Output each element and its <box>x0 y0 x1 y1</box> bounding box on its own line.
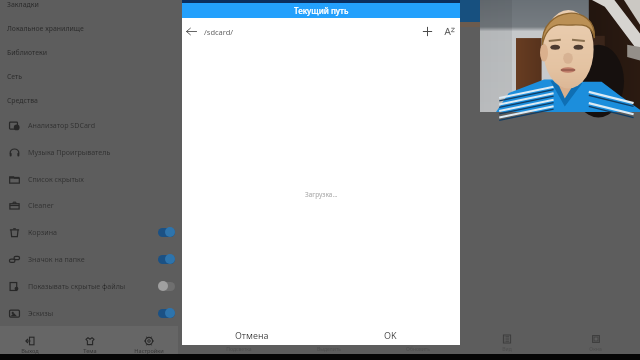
button[interactable]: OK <box>321 329 460 341</box>
button[interactable]: Switch on <box>158 254 175 264</box>
staticText: Библиотеки <box>7 48 48 57</box>
staticText: Значок на папке <box>28 254 85 264</box>
staticText: Выделить <box>317 346 341 353</box>
button[interactable]: Вид <box>462 331 551 353</box>
staticText: OK <box>384 329 397 341</box>
button[interactable]: Switch on <box>158 227 175 237</box>
staticText: Список скрытых <box>28 174 84 184</box>
button[interactable]: Выделить <box>284 331 373 353</box>
button[interactable]: Вставить <box>104 331 194 353</box>
button[interactable]: Средства <box>0 89 178 112</box>
button[interactable]: Back <box>182 18 201 45</box>
staticText: Отмена <box>235 329 269 341</box>
button[interactable]: Выход <box>0 326 60 354</box>
button[interactable]: Библиотеки <box>0 41 178 64</box>
button[interactable]: Тема <box>60 326 119 354</box>
button[interactable]: Локальное хранилище <box>0 17 178 40</box>
button[interactable]: Отмена <box>182 329 321 341</box>
button[interactable]: Значок на папке <box>0 246 178 272</box>
staticText: Вставить <box>138 346 160 353</box>
staticText: Обновить <box>406 346 430 353</box>
staticText: Музыка Проигрыватель <box>28 147 111 157</box>
staticText: /sdcard/ <box>204 27 234 37</box>
staticText: Средства <box>7 96 38 105</box>
button[interactable]: Показывать скрытые файлы <box>0 273 178 299</box>
button[interactable]: Анализатор SDCard <box>0 112 178 138</box>
button[interactable]: Switch on <box>158 308 175 318</box>
button[interactable]: Копировать <box>14 331 104 353</box>
staticText: Закладки <box>7 0 39 9</box>
button[interactable]: Настройки <box>119 326 178 354</box>
staticText: Тема <box>83 347 97 354</box>
staticText: Выход <box>21 347 39 354</box>
button[interactable]: Список скрытых <box>0 166 178 192</box>
staticText: Текущий путь <box>294 5 349 16</box>
button[interactable]: Корзина <box>0 219 178 245</box>
staticText: Показывать скрытые файлы <box>28 281 126 291</box>
button[interactable]: Музыка Проигрыватель <box>0 139 178 165</box>
staticText: Анализатор SDCard <box>28 120 96 130</box>
button[interactable]: Закладки <box>0 0 178 16</box>
staticText: Подсветка <box>226 346 252 353</box>
staticText: Сеть <box>7 72 23 81</box>
button[interactable]: Add <box>416 18 438 45</box>
staticText: Эскизы <box>28 308 54 318</box>
button[interactable]: Подсветка <box>194 331 284 353</box>
button[interactable]: Эскизы <box>0 300 178 326</box>
staticText: Загрузка... <box>305 190 338 199</box>
staticText: Корзина <box>28 227 57 237</box>
staticText: Настройки <box>134 347 164 354</box>
button[interactable]: Switch off <box>158 281 175 291</box>
button[interactable]: Sort <box>438 18 460 45</box>
button[interactable]: Cleaner <box>0 192 178 218</box>
staticText: Локальное хранилище <box>7 24 84 33</box>
button[interactable]: Окна <box>551 331 640 353</box>
staticText: Cleaner <box>28 200 54 210</box>
staticText: Вид <box>502 346 512 353</box>
button[interactable]: Обновить <box>373 331 462 353</box>
staticText: Окна <box>589 346 602 353</box>
